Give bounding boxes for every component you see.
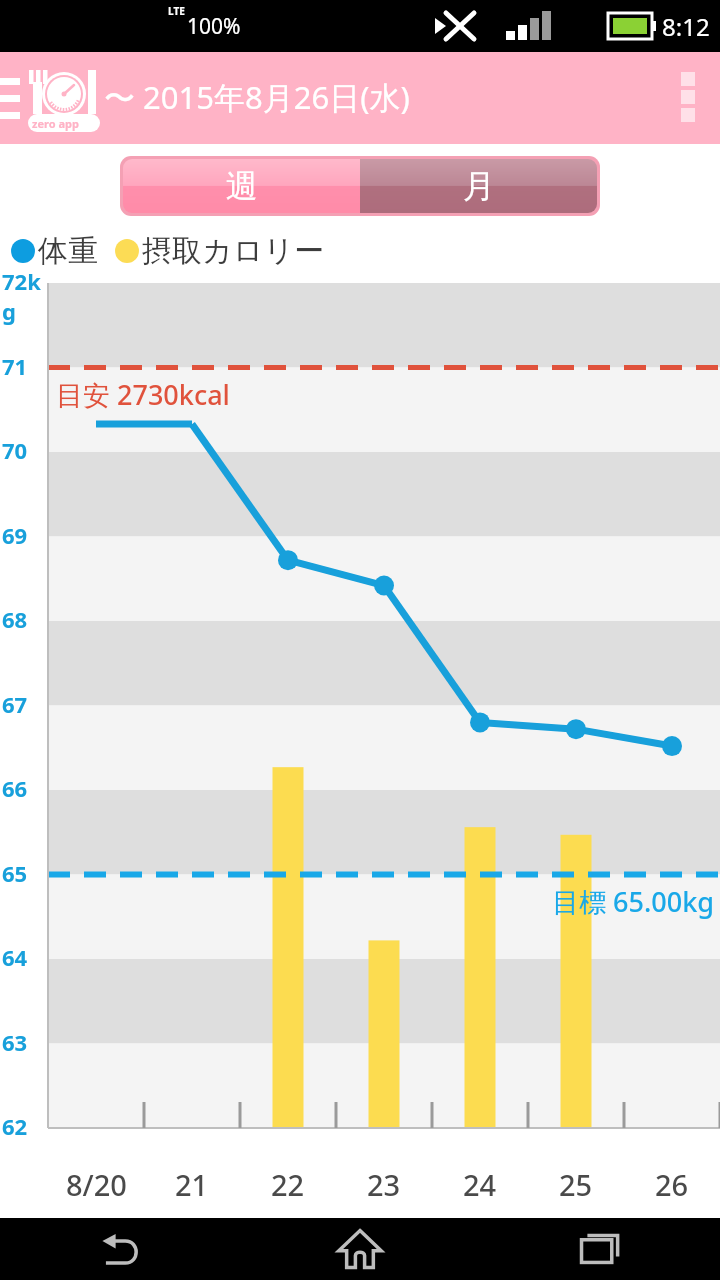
button[interactable]: Back	[0, 1218, 240, 1280]
staticText: 67	[2, 689, 46, 719]
staticText: 23	[367, 1165, 401, 1204]
staticText: 62	[2, 1111, 46, 1141]
staticText: 25	[559, 1165, 593, 1204]
staticText: 68	[2, 604, 46, 634]
button[interactable]: 週	[123, 159, 360, 213]
staticText: 〜 2015年8月26日(水)	[104, 76, 410, 118]
staticText: 100%	[187, 12, 241, 41]
staticText: 目安 2730kcal	[56, 376, 230, 413]
staticText: LTE	[168, 4, 185, 18]
staticText: 目標 65.00kg	[0, 883, 714, 920]
staticText: 8/20	[66, 1165, 127, 1204]
staticText: 72kg	[2, 266, 46, 326]
staticText: 摂取カロリー	[142, 232, 325, 270]
staticText: 24	[463, 1165, 497, 1204]
staticText: zero app	[32, 116, 79, 131]
button[interactable]: Menu	[0, 52, 108, 144]
staticText: 65	[2, 858, 46, 888]
staticText: 月	[463, 166, 495, 206]
staticText: 26	[655, 1165, 689, 1204]
button[interactable]: More options	[656, 52, 720, 144]
staticText: 71	[2, 351, 46, 381]
button[interactable]: Home	[240, 1218, 480, 1280]
staticText: 8:12	[662, 10, 710, 43]
staticText: 66	[2, 773, 46, 803]
staticText: 21	[175, 1165, 209, 1204]
staticText: 64	[2, 942, 46, 972]
staticText: 70	[2, 435, 46, 465]
button[interactable]: Recent apps	[480, 1218, 720, 1280]
staticText: 週	[226, 166, 258, 206]
staticText: 22	[271, 1165, 305, 1204]
staticText: 体重	[38, 232, 98, 270]
staticText: 63	[2, 1027, 46, 1057]
button[interactable]: 月	[360, 159, 597, 213]
staticText: 69	[2, 520, 46, 550]
